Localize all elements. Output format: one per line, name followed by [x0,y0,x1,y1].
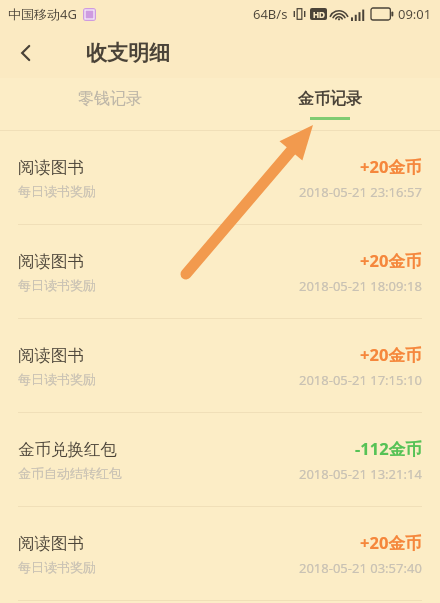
staticText: -112金币 [355,437,422,460]
staticText: 2018-05-21 13:21:14 [299,465,422,483]
button[interactable]: 阅读图书 [0,507,440,600]
staticText: 每日读书奖励 [18,183,96,199]
staticText: 阅读图书 [18,157,84,178]
staticText: 每日读书奖励 [18,559,96,575]
staticText: +20金币 [360,531,422,554]
staticText: 2018-05-21 18:09:18 [299,277,422,295]
staticText: 阅读图书 [18,251,84,272]
staticText: 2018-05-21 17:15:10 [299,371,422,389]
button[interactable]: Back [0,28,52,78]
staticText: 金币记录 [298,89,362,109]
staticText: HD [313,9,325,20]
button[interactable]: 金币兑换红包 [0,413,440,506]
staticText: 金币自动结转红包 [18,465,122,481]
button[interactable]: 阅读图书 [0,131,440,224]
button[interactable]: 零钱记录 [0,78,220,130]
staticText: 64B/s [253,5,288,23]
staticText: 阅读图书 [18,533,84,554]
staticText: +20金币 [360,343,422,366]
staticText: 每日读书奖励 [18,371,96,387]
staticText: 收支明细 [86,40,170,66]
button[interactable]: 阅读图书 [0,319,440,412]
staticText: 零钱记录 [78,89,142,109]
staticText: 金币兑换红包 [18,439,117,460]
staticText: 中国移动4G [8,5,77,23]
staticText: 09:01 [398,5,432,23]
staticText: 阅读图书 [18,345,84,366]
staticText: +20金币 [360,249,422,272]
button[interactable]: 金币记录 [220,78,440,130]
staticText: +20金币 [360,155,422,178]
staticText: 2018-05-21 03:57:40 [299,559,422,577]
staticText: 每日读书奖励 [18,277,96,293]
staticText: 2018-05-21 23:16:57 [299,183,422,201]
button[interactable]: 阅读图书 [0,225,440,318]
